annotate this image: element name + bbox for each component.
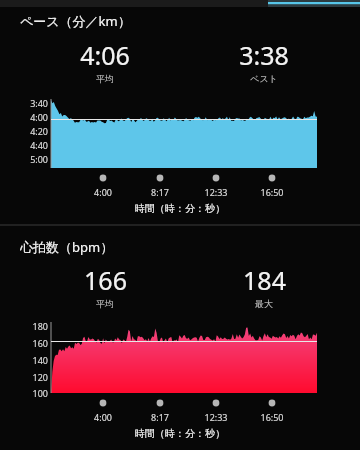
button[interactable]: Heart rate chart xyxy=(0,226,360,450)
staticText: 平均 xyxy=(96,73,114,84)
staticText: 時間（時：分：秒） xyxy=(90,202,270,215)
staticText: 4:20 xyxy=(8,125,48,137)
staticText: 180 xyxy=(8,320,48,332)
staticText: 4:00 xyxy=(8,111,48,123)
staticText: 16:50 xyxy=(242,186,302,198)
staticText: 8:17 xyxy=(130,411,190,423)
staticText: 184 xyxy=(243,263,286,297)
button[interactable]: 3:38 xyxy=(209,38,319,84)
staticText: 平均 xyxy=(96,298,114,309)
button[interactable]: 166 xyxy=(50,263,160,309)
staticText: 4:06 xyxy=(80,38,130,72)
staticText: 120 xyxy=(8,371,48,383)
staticText: 100 xyxy=(8,387,48,399)
staticText: 166 xyxy=(84,263,127,297)
staticText: 5:00 xyxy=(8,153,48,165)
button[interactable]: 184 xyxy=(209,263,319,309)
staticText: 最大 xyxy=(255,298,273,309)
staticText: 140 xyxy=(8,354,48,366)
staticText: 3:40 xyxy=(8,97,48,109)
staticText: 12:33 xyxy=(186,411,246,423)
staticText: 16:50 xyxy=(242,411,302,423)
button[interactable]: Pace chart xyxy=(0,7,360,225)
staticText: 4:00 xyxy=(73,186,133,198)
staticText: 4:00 xyxy=(73,411,133,423)
staticText: ベスト xyxy=(250,73,278,84)
staticText: 8:17 xyxy=(130,186,190,198)
staticText: ペース（分／km） xyxy=(20,12,131,30)
button[interactable]: 4:06 xyxy=(50,38,160,84)
staticText: 3:38 xyxy=(239,38,289,72)
staticText: 心拍数（bpm） xyxy=(20,238,114,256)
staticText: 12:33 xyxy=(186,186,246,198)
staticText: 4:40 xyxy=(8,139,48,151)
staticText: 160 xyxy=(8,337,48,349)
staticText: 時間（時：分：秒） xyxy=(90,427,270,440)
